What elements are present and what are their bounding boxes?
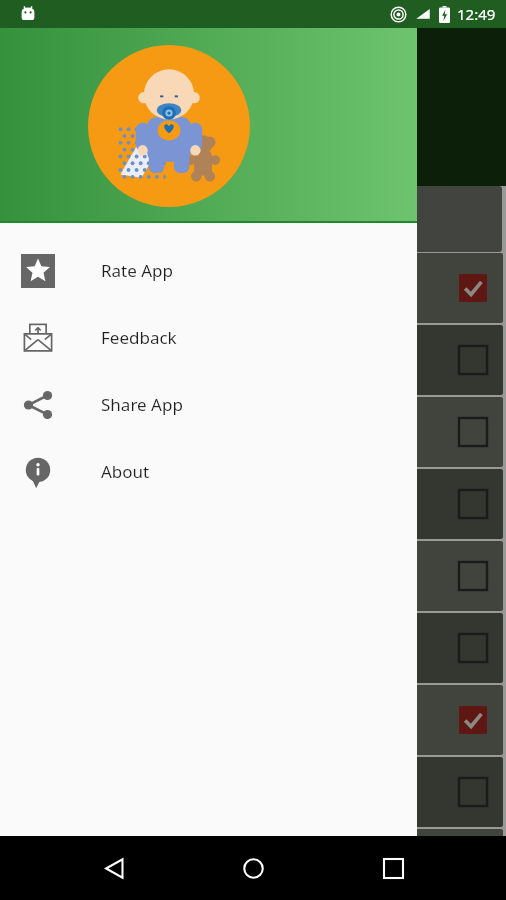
button[interactable] — [3, 325, 503, 395]
button[interactable]: Recent apps — [367, 842, 419, 894]
button[interactable] — [3, 541, 503, 611]
button[interactable]: Back — [88, 842, 140, 894]
staticText: Share App — [101, 393, 183, 416]
staticText: Feedback — [101, 326, 177, 349]
button[interactable] — [3, 829, 503, 899]
button[interactable]: Share App — [0, 371, 417, 438]
button[interactable]: Home — [227, 842, 279, 894]
button[interactable] — [3, 469, 503, 539]
button[interactable] — [3, 613, 503, 683]
button[interactable]: Feedback — [0, 304, 417, 371]
button[interactable] — [3, 757, 503, 827]
staticText: About — [101, 460, 150, 483]
button[interactable]: Rate App — [0, 237, 417, 304]
button[interactable]: About — [0, 438, 417, 505]
button[interactable] — [3, 397, 503, 467]
staticText: 12:49 — [457, 4, 496, 24]
button[interactable] — [3, 685, 503, 755]
button[interactable] — [3, 253, 503, 323]
staticText: Rate App — [101, 259, 174, 282]
